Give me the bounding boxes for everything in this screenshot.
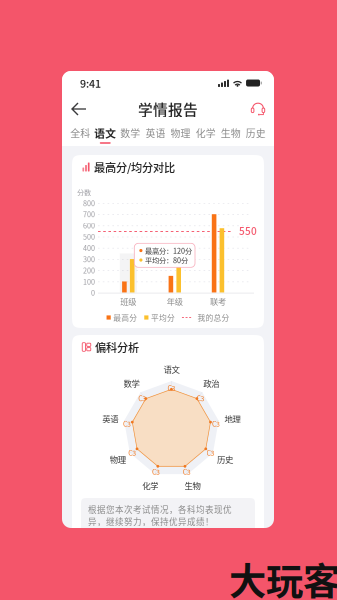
staticText: C3 xyxy=(128,448,136,458)
staticText: C3 xyxy=(183,467,191,477)
button[interactable]: Back xyxy=(71,96,103,122)
button[interactable]: 语文 xyxy=(93,123,118,145)
button[interactable]: Customer service xyxy=(233,96,265,122)
staticText: 550 xyxy=(239,223,257,238)
staticText: 生物 xyxy=(221,126,241,140)
staticText: C3 xyxy=(123,419,131,429)
staticText: 平均分：80分 xyxy=(145,255,188,265)
staticText: 800 xyxy=(83,198,95,208)
button[interactable]: 化学 xyxy=(193,123,218,145)
staticText: 大玩客 xyxy=(229,552,337,600)
button[interactable]: 物理 xyxy=(168,123,193,145)
staticText: C3 xyxy=(212,419,220,429)
staticText: 学情报告 xyxy=(138,98,198,120)
staticText: 年级 xyxy=(167,295,183,307)
staticText: 100 xyxy=(83,276,95,287)
staticText: 300 xyxy=(83,254,95,264)
staticText: 物理 xyxy=(110,453,126,465)
button[interactable]: 历史 xyxy=(243,123,268,145)
staticText: C3 xyxy=(152,467,160,477)
staticText: 平均分 xyxy=(151,312,175,323)
staticText: C3 xyxy=(206,448,214,458)
staticText: 数学 xyxy=(123,377,139,389)
staticText: 班级 xyxy=(120,295,136,307)
staticText: 最高分 xyxy=(113,312,137,323)
staticText: 200 xyxy=(83,265,95,275)
staticText: 600 xyxy=(83,220,95,231)
staticText: 400 xyxy=(83,243,95,253)
staticText: 英语 xyxy=(145,126,165,140)
staticText: 最高分/均分对比 xyxy=(94,159,175,175)
staticText: 化学 xyxy=(196,126,216,140)
staticText: 数学 xyxy=(120,126,140,140)
staticText: 政治 xyxy=(203,377,219,389)
staticText: 0 xyxy=(91,287,95,298)
button[interactable]: 全科 xyxy=(68,123,93,145)
staticText: 700 xyxy=(83,209,95,219)
staticText: 语文 xyxy=(163,363,179,375)
staticText: 物理 xyxy=(171,126,191,140)
button[interactable]: 生物 xyxy=(218,123,243,145)
staticText: 9:41 xyxy=(80,75,101,91)
button[interactable]: 数学 xyxy=(118,123,143,145)
staticText: 偏科分析 xyxy=(95,339,139,355)
staticText: 历史 xyxy=(246,126,266,140)
staticText: 联考 xyxy=(210,295,226,307)
staticText: C3 xyxy=(196,393,204,403)
staticText: 全科 xyxy=(70,126,90,140)
staticText: 地理 xyxy=(224,412,240,425)
staticText: 最高分：120分 xyxy=(145,245,192,256)
staticText: 500 xyxy=(83,231,95,242)
staticText: C3 xyxy=(167,383,175,393)
staticText: 根据您本次考试情况，各科均表现优异，继续努力，保持优异成绩！ xyxy=(88,503,232,528)
staticText: C3 xyxy=(138,393,146,403)
staticText: 语文 xyxy=(94,125,116,141)
staticText: 生物 xyxy=(185,479,201,491)
staticText: 我的总分 xyxy=(197,312,229,323)
staticText: 历史 xyxy=(217,453,233,465)
button[interactable]: 英语 xyxy=(143,123,168,145)
staticText: 分数 xyxy=(77,187,91,197)
staticText: 英语 xyxy=(102,412,118,425)
staticText: 化学 xyxy=(142,479,158,491)
